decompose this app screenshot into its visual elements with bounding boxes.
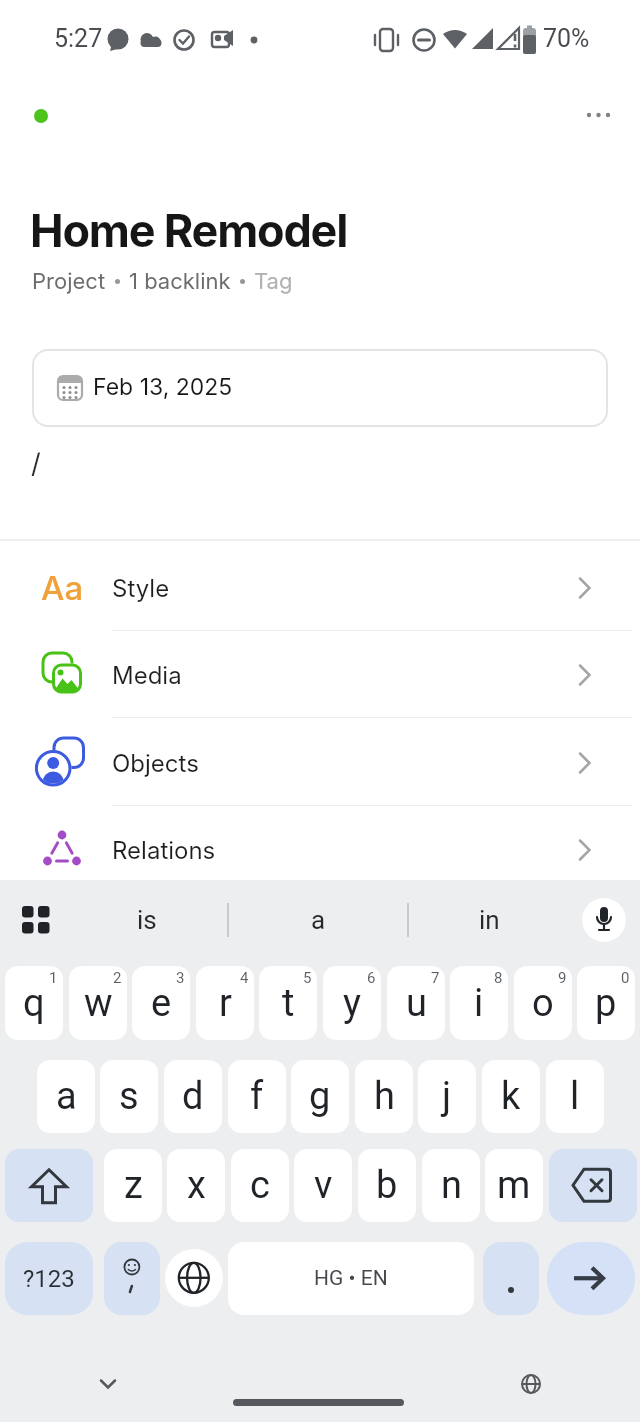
staticText: / [31, 447, 41, 480]
staticText: Feb 13, 2025 [93, 373, 233, 401]
staticText: 4 [240, 969, 249, 987]
staticText: i [474, 981, 484, 1026]
staticText: x [187, 1163, 206, 1208]
staticText: a [311, 905, 326, 935]
staticText: 5:27 [54, 24, 103, 53]
staticText: 9 [558, 969, 567, 987]
staticText: Tag [254, 268, 293, 295]
staticText: 3 [176, 969, 185, 987]
staticText: j [442, 1074, 452, 1119]
staticText: v [314, 1163, 333, 1208]
staticText: 1 backlink [129, 268, 231, 295]
staticText: 7 [431, 969, 440, 987]
staticText: 8 [494, 969, 503, 987]
staticText: Media [112, 661, 182, 690]
staticText: Home Remodel [30, 203, 348, 257]
staticText: a [56, 1074, 77, 1119]
staticText: o [532, 981, 554, 1026]
staticText: z [124, 1163, 143, 1208]
staticText: 0 [621, 969, 630, 987]
staticText: u [406, 981, 427, 1026]
staticText: k [501, 1074, 521, 1119]
staticText: Style [112, 574, 170, 603]
staticText: s [119, 1074, 139, 1119]
staticText: HG • EN [314, 1266, 388, 1291]
staticText: 6 [367, 969, 376, 987]
staticText: 70% [543, 24, 590, 53]
staticText: is [137, 905, 157, 935]
staticText: in [479, 905, 500, 935]
staticText: Relations [112, 836, 216, 865]
staticText: 2 [113, 969, 122, 987]
staticText: m [497, 1163, 531, 1208]
staticText: e [151, 981, 172, 1026]
staticText: Objects [112, 749, 199, 778]
staticText: r [219, 981, 232, 1026]
staticText: y [343, 981, 361, 1026]
staticText: w [84, 981, 113, 1026]
staticText: t [282, 981, 295, 1026]
staticText: c [250, 1163, 270, 1208]
staticText: p [595, 981, 617, 1026]
staticText: l [570, 1074, 580, 1119]
staticText: n [441, 1163, 462, 1208]
staticText: d [182, 1074, 204, 1119]
staticText: Aa [41, 568, 84, 608]
staticText: ?123 [23, 1265, 75, 1293]
staticText: Project [32, 268, 106, 295]
staticText: h [374, 1074, 395, 1119]
staticText: q [23, 981, 45, 1026]
staticText: g [309, 1074, 331, 1119]
staticText: f [250, 1074, 264, 1119]
staticText: 5 [303, 969, 312, 987]
staticText: b [376, 1163, 398, 1208]
staticText: 1 [49, 969, 58, 987]
